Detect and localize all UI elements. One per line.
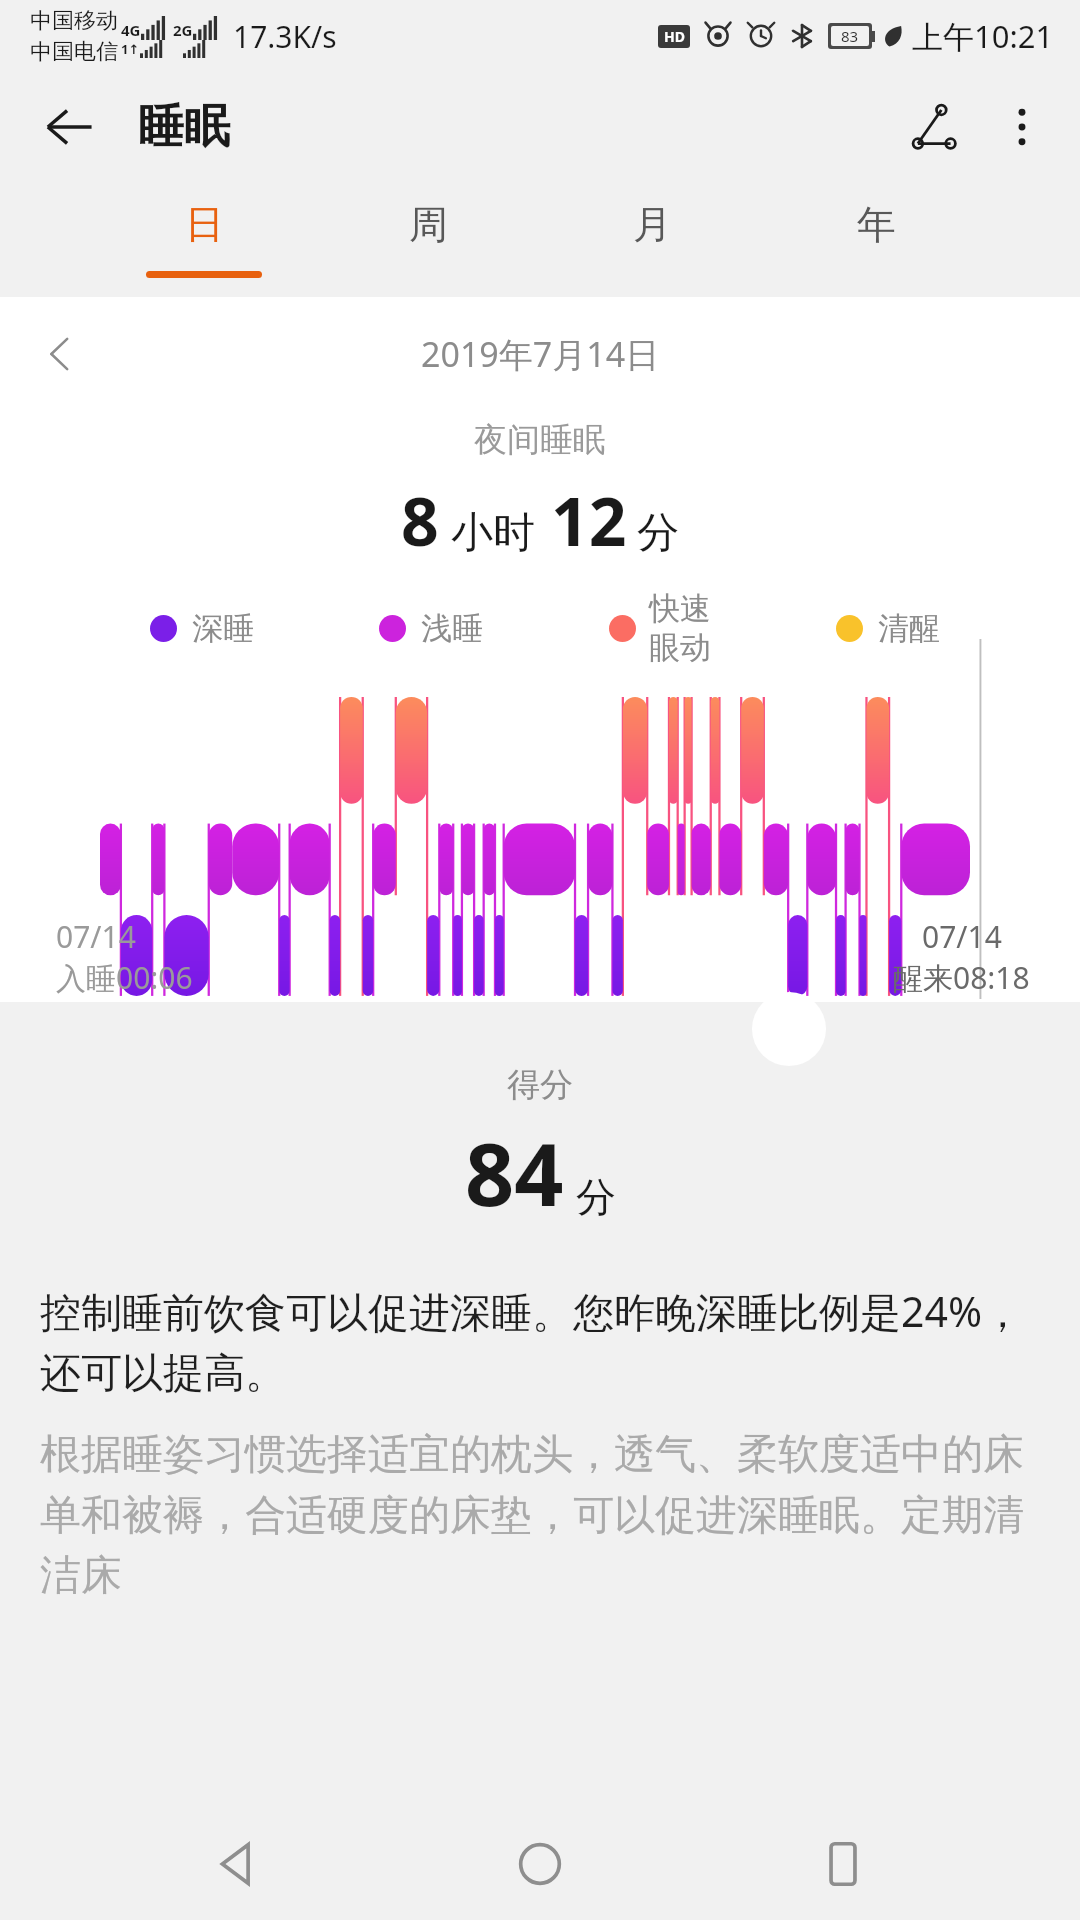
staticText: 入睡00:06 <box>56 957 193 998</box>
staticText: 2G <box>173 20 193 40</box>
staticText: 眼动 <box>649 628 711 667</box>
button[interactable]: Back <box>173 1808 303 1920</box>
staticText: 12 <box>551 475 627 565</box>
staticText: 2019年7月14日 <box>421 331 660 377</box>
staticText: 年 <box>857 200 896 249</box>
button[interactable]: 年 <box>764 182 988 297</box>
staticText: 控制睡前饮食可以促进深睡。您昨晚深睡比例是24%，还可以提高。 <box>40 1283 1040 1399</box>
button[interactable]: 月 <box>540 182 764 297</box>
button[interactable]: More options <box>978 83 1066 171</box>
staticText: 睡眠 <box>138 98 230 156</box>
staticText: 中国电信 <box>30 38 118 66</box>
staticText: 1↑ <box>121 40 140 58</box>
staticText: 84 <box>465 1114 564 1231</box>
staticText: 月 <box>633 200 672 249</box>
staticText: 07/14 <box>56 916 136 957</box>
staticText: 中国移动 <box>30 7 118 35</box>
button[interactable]: Previous day <box>24 318 96 390</box>
button[interactable]: Detail handle <box>752 992 826 1066</box>
button[interactable]: Share <box>890 83 978 171</box>
button[interactable]: 浅睡 <box>379 609 483 648</box>
staticText: 浅睡 <box>421 609 483 648</box>
button[interactable]: 深睡 <box>150 609 254 648</box>
button[interactable]: 快速 <box>609 589 711 667</box>
staticText: 深睡 <box>192 609 254 648</box>
staticText: 清醒 <box>878 609 940 648</box>
button[interactable]: Home <box>475 1808 605 1920</box>
button[interactable]: 周 <box>316 182 540 297</box>
button[interactable]: 清醒 <box>836 609 940 648</box>
staticText: 17.3K/s <box>233 16 337 57</box>
staticText: 夜间睡眠 <box>0 419 1080 461</box>
staticText: 4G <box>121 20 141 40</box>
staticText: 日 <box>185 200 224 249</box>
staticText: 07/14 <box>922 916 1002 957</box>
button[interactable]: 日 <box>92 182 316 297</box>
staticText: 小时 <box>451 507 535 560</box>
staticText: 根据睡姿习惯选择适宜的枕头，透气、柔软度适中的床单和被褥，合适硬度的床垫，可以促… <box>40 1429 1040 1601</box>
staticText: 上午10:21 <box>912 15 1054 57</box>
staticText: 快速 <box>649 589 711 628</box>
button[interactable]: Recent apps <box>778 1808 908 1920</box>
button[interactable]: Back <box>26 84 112 170</box>
staticText: HD <box>664 27 685 46</box>
staticText: 醒来08:18 <box>893 957 1030 998</box>
staticText: 8 <box>401 475 439 565</box>
staticText: 得分 <box>0 1064 1080 1106</box>
staticText: 83 <box>841 26 859 46</box>
staticText: 分 <box>576 1172 616 1222</box>
staticText: 周 <box>409 200 448 249</box>
staticText: 分 <box>637 507 679 560</box>
